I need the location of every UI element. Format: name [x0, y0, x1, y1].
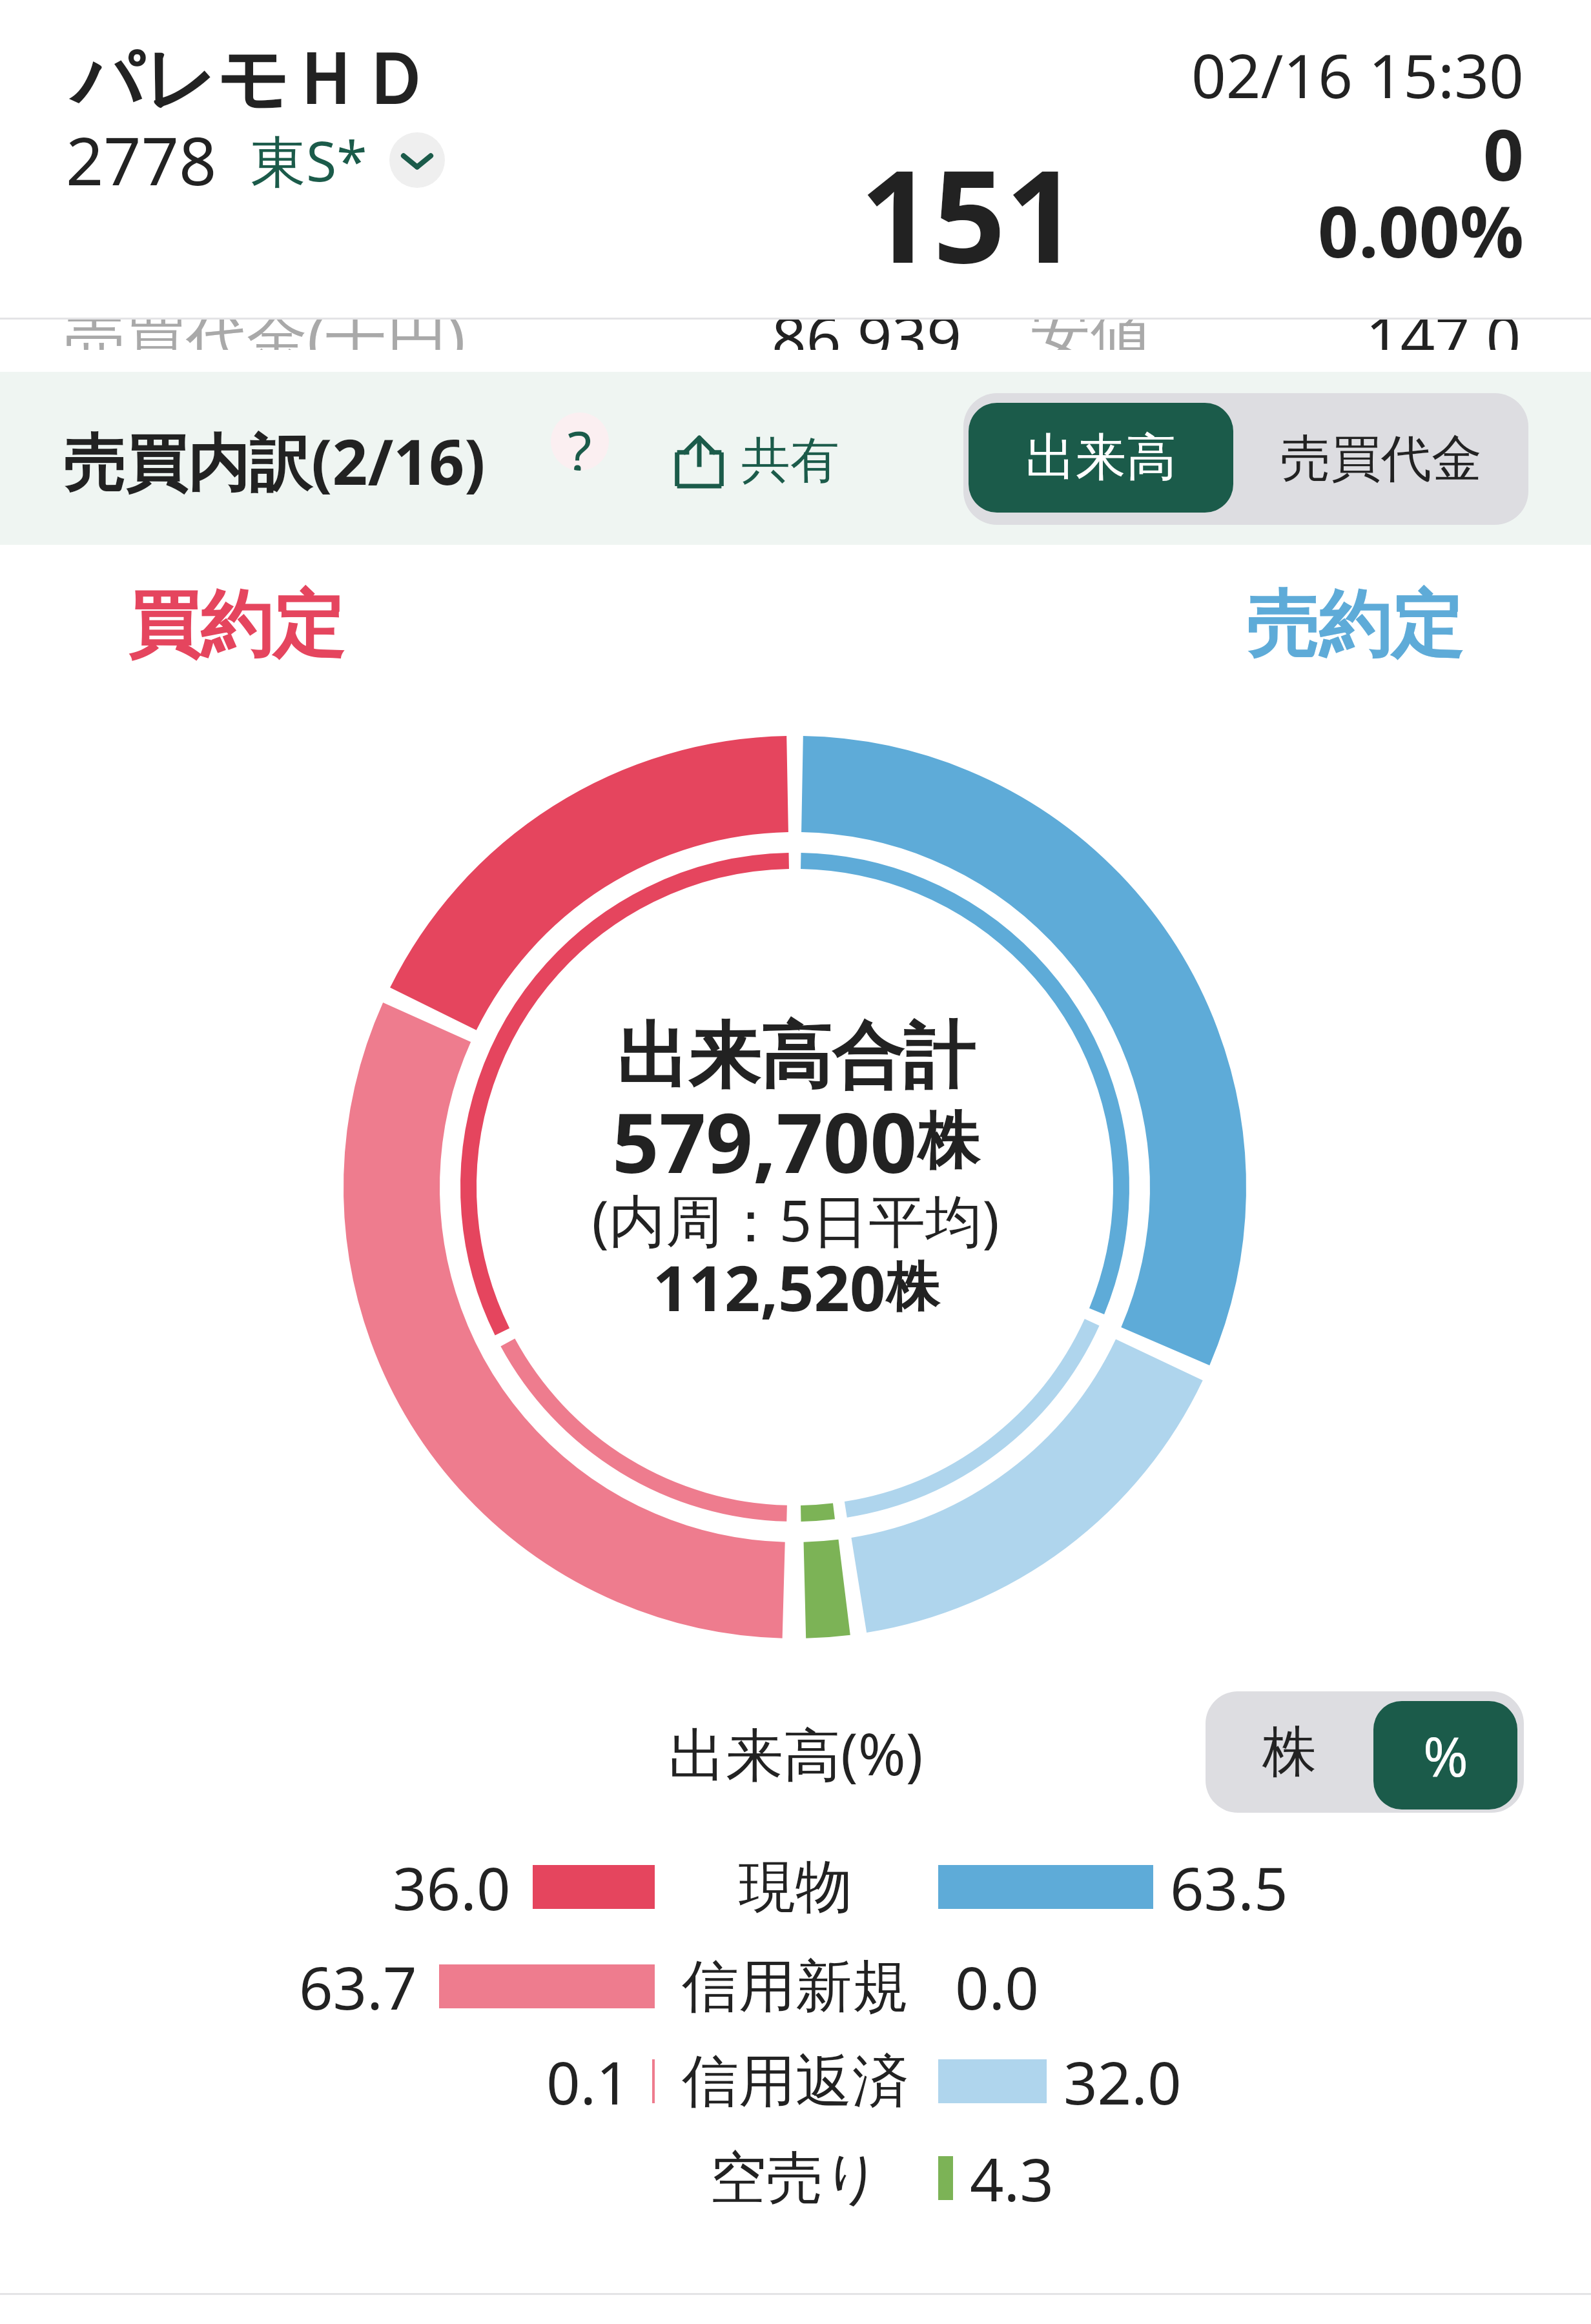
staticText: 売買代金(千円) — [65, 320, 466, 350]
staticText: 信用返済 — [682, 2046, 909, 2117]
staticText: 出来高(%) — [668, 1714, 923, 1793]
staticText: 売約定 — [1246, 580, 1463, 671]
staticText: 579,700 — [612, 1085, 918, 1197]
button[interactable]: 株 — [1206, 1691, 1373, 1813]
button[interactable]: Expand details — [389, 132, 445, 188]
staticText: 株 — [918, 1103, 979, 1181]
staticText: パレモＨＤ — [71, 36, 431, 125]
staticText: 0.0 — [955, 1946, 1039, 2027]
staticText: ? — [568, 413, 592, 471]
staticText: 112,520 — [653, 1244, 886, 1329]
staticText: 出来高 — [1025, 426, 1176, 489]
staticText: 02/16 15:30 — [1191, 34, 1524, 116]
staticText: 空売り — [710, 2143, 882, 2214]
button[interactable]: Help — [551, 413, 609, 471]
staticText: 安値 — [1030, 320, 1151, 350]
staticText: 86,939 — [772, 320, 962, 350]
staticText: 現物 — [739, 1851, 852, 1923]
button[interactable]: 売買代金 — [1233, 393, 1528, 525]
staticText: 信用新規 — [682, 1951, 909, 2023]
staticText: % — [1423, 1718, 1468, 1792]
staticText: 0 — [1483, 105, 1524, 201]
staticText: 株 — [886, 1254, 939, 1321]
button[interactable]: % — [1373, 1701, 1517, 1809]
staticText: 36.0 — [393, 1847, 511, 1928]
staticText: 4.3 — [970, 2138, 1054, 2219]
staticText: 63.7 — [299, 1946, 417, 2027]
staticText: 63.5 — [1170, 1847, 1288, 1928]
staticText: 0.1 — [546, 2041, 630, 2122]
staticText: 151 — [860, 127, 1079, 300]
staticText: 売買代金 — [1280, 427, 1482, 491]
staticText: 147.0 — [1366, 320, 1521, 350]
button[interactable]: Share — [674, 430, 839, 492]
staticText: 共有 — [741, 430, 839, 492]
staticText: 0.00% — [1318, 181, 1524, 278]
staticText: 2778 — [66, 115, 217, 205]
staticText: 買約定 — [128, 580, 345, 671]
staticText: 東S* — [251, 122, 367, 198]
staticText: 出来高合計 — [617, 1012, 975, 1102]
staticText: 32.0 — [1063, 2041, 1182, 2122]
staticText: (内周：5日平均) — [591, 1181, 1000, 1258]
button[interactable]: 出来高 — [969, 403, 1233, 513]
staticText: 売買内訳(2/16) — [63, 418, 486, 503]
staticText: 株 — [1262, 1718, 1317, 1786]
